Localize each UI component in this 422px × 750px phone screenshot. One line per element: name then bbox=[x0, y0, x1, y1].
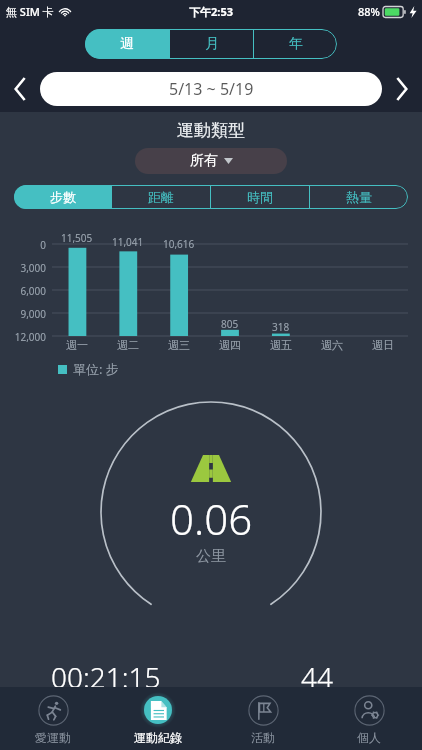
staticText: 週三 bbox=[168, 338, 190, 352]
button[interactable]: 週 bbox=[85, 29, 169, 59]
staticText: 所有 bbox=[190, 152, 218, 170]
button[interactable]: 活動 bbox=[210, 687, 316, 750]
staticText: 運動類型 bbox=[177, 120, 245, 141]
staticText: 公里 bbox=[196, 547, 226, 566]
staticText: 年 bbox=[289, 35, 303, 53]
button[interactable]: 月 bbox=[170, 29, 253, 59]
staticText: 週二 bbox=[117, 338, 139, 352]
staticText: 44 bbox=[301, 658, 333, 696]
button[interactable]: 距離 bbox=[112, 185, 210, 209]
staticText: 318 bbox=[272, 320, 290, 334]
staticText: 個人 bbox=[357, 730, 381, 745]
staticText: 10,616 bbox=[163, 237, 195, 251]
staticText: 9,000 bbox=[0, 307, 46, 321]
staticText: 5/13 ~ 5/19 bbox=[169, 78, 254, 100]
button[interactable]: 熱量 bbox=[310, 185, 408, 209]
staticText: 週六 bbox=[321, 338, 343, 352]
staticText: 步數 bbox=[50, 189, 76, 205]
staticText: 88% bbox=[358, 4, 380, 19]
button[interactable]: Previous week bbox=[0, 66, 40, 112]
staticText: 月 bbox=[205, 35, 219, 53]
button[interactable]: 年 bbox=[254, 29, 337, 59]
staticText: 0 bbox=[0, 238, 46, 252]
staticText: 週日 bbox=[372, 338, 394, 352]
staticText: 週一 bbox=[66, 338, 88, 352]
staticText: 活動 bbox=[251, 730, 275, 745]
staticText: 熱量 bbox=[346, 189, 372, 205]
button[interactable]: 運動紀錄 bbox=[105, 687, 210, 750]
other: 愛運動 bbox=[38, 695, 69, 726]
button[interactable]: 時間 bbox=[211, 185, 309, 209]
staticText: 週五 bbox=[270, 338, 292, 352]
staticText: 3,000 bbox=[0, 261, 46, 275]
button[interactable]: Next week bbox=[382, 66, 422, 112]
staticText: 週四 bbox=[219, 338, 241, 352]
button[interactable]: 步數 bbox=[14, 185, 111, 209]
staticText: 0.06 bbox=[170, 490, 253, 547]
staticText: 12,000 bbox=[0, 330, 46, 344]
staticText: 愛運動 bbox=[35, 730, 71, 745]
staticText: 無 SIM 卡 bbox=[6, 4, 54, 19]
staticText: 運動紀錄 bbox=[134, 730, 182, 745]
button[interactable]: 個人 bbox=[316, 687, 422, 750]
button[interactable]: 愛運動 bbox=[0, 687, 105, 750]
staticText: 時間 bbox=[247, 189, 273, 205]
staticText: 11,505 bbox=[61, 231, 93, 245]
button[interactable]: 所有 bbox=[135, 148, 287, 174]
staticText: 805 bbox=[221, 317, 239, 331]
staticText: 單位: 步 bbox=[73, 360, 119, 378]
staticText: 00:21:15 bbox=[51, 658, 161, 696]
other: 個人 bbox=[354, 695, 385, 726]
staticText: 下午2:53 bbox=[189, 4, 233, 19]
other: 活動 bbox=[248, 695, 279, 726]
staticText: 距離 bbox=[148, 189, 174, 205]
staticText: 11,041 bbox=[112, 235, 144, 249]
button[interactable]: 5/13 ~ 5/19 bbox=[40, 72, 382, 106]
other: 運動紀錄 bbox=[149, 701, 168, 720]
staticText: 6,000 bbox=[0, 284, 46, 298]
staticText: 週 bbox=[120, 35, 134, 53]
